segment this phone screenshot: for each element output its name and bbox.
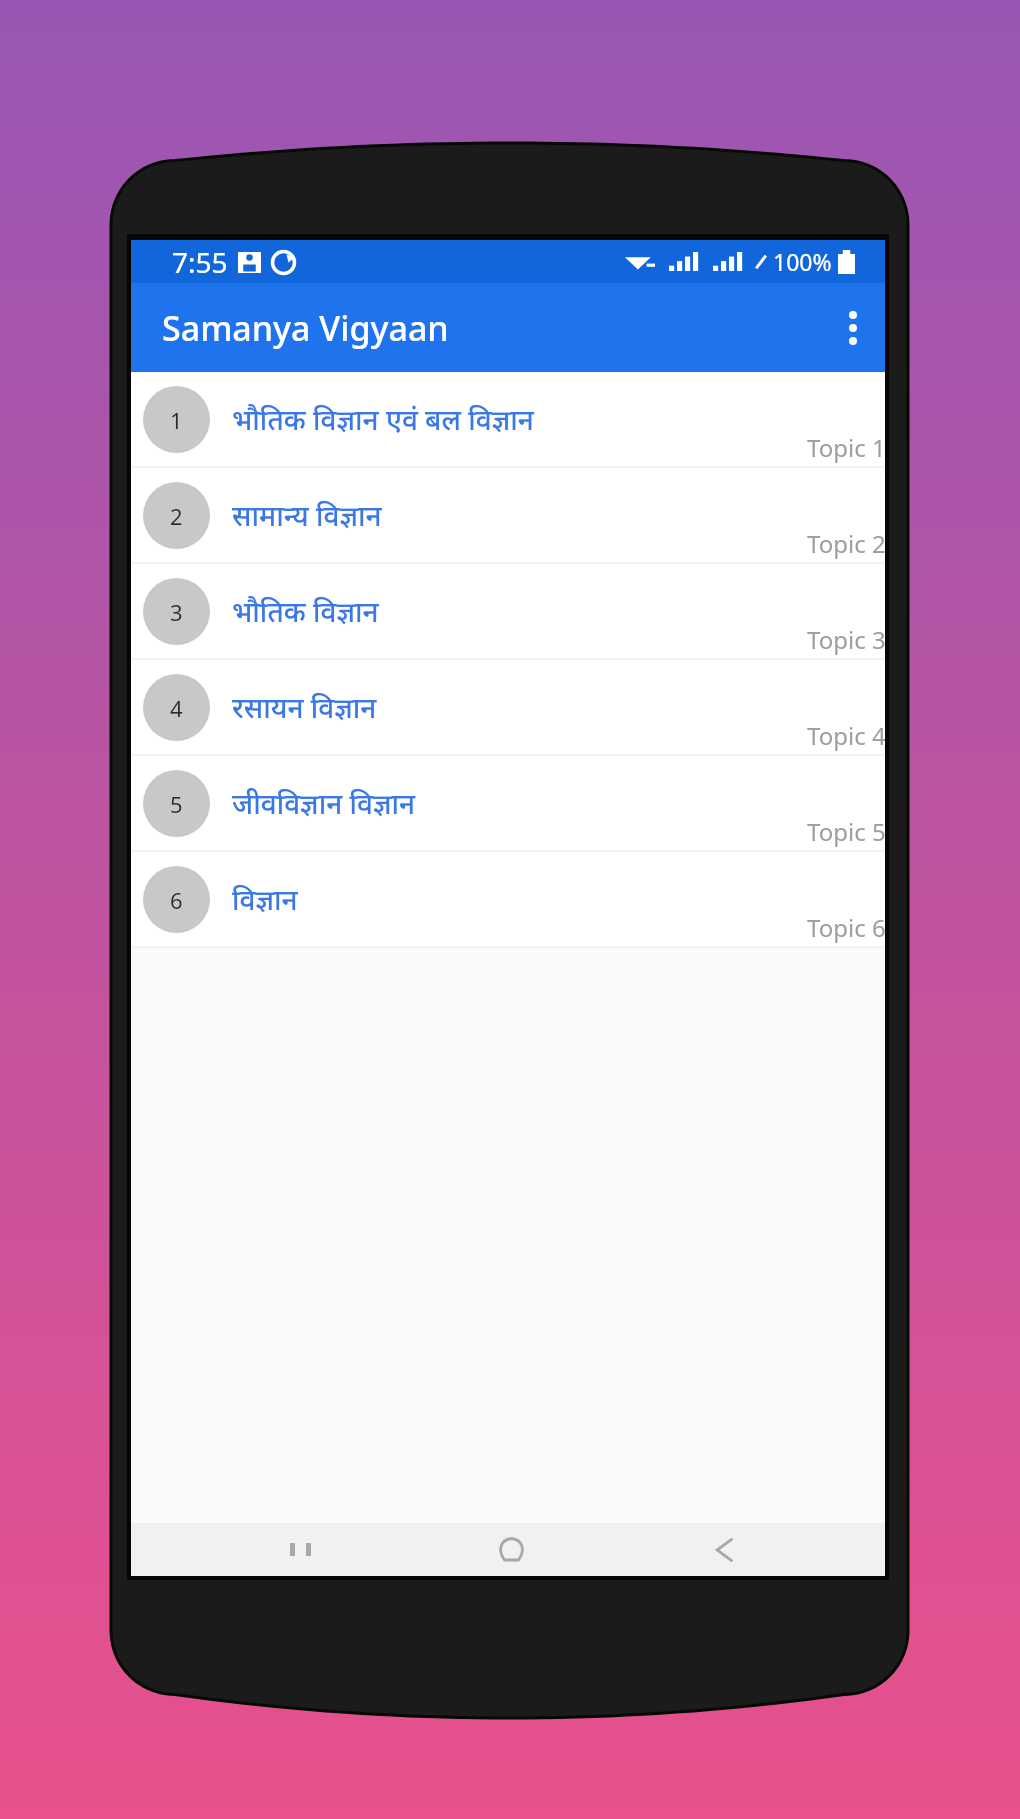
button[interactable]: More options [821,284,885,371]
staticText: Topic 1 [807,431,885,464]
staticText: विज्ञान [232,880,298,918]
button[interactable]: 4 [131,660,885,754]
button[interactable]: 6 [131,852,885,946]
staticText: Topic 6 [807,911,885,944]
staticText: 6 [170,885,183,915]
staticText: Samanya Vigyaan [162,305,449,351]
button[interactable]: Recents [274,1523,326,1576]
staticText: भौतिक विज्ञान [232,592,379,630]
button[interactable]: 2 [131,468,885,562]
staticText: 100% [773,246,832,277]
button[interactable]: Back [698,1523,750,1576]
button[interactable]: 5 [131,756,885,850]
staticText: 7:55 [172,243,228,281]
staticText: 5 [170,789,183,819]
staticText: Topic 4 [807,719,885,752]
staticText: 2 [170,501,183,531]
staticText: 3 [170,597,183,627]
staticText: Topic 2 [807,527,885,560]
staticText: 4 [170,693,183,723]
staticText: Topic 5 [807,815,885,848]
staticText: Topic 3 [807,623,885,656]
staticText: रसायन विज्ञान [232,688,377,726]
staticText: भौतिक विज्ञान एवं बल विज्ञान [232,400,534,438]
button[interactable]: 1 [131,372,885,466]
staticText: 1 [170,405,183,435]
button[interactable]: 3 [131,564,885,658]
staticText: जीवविज्ञान विज्ञान [232,784,416,822]
staticText: सामान्य विज्ञान [232,496,382,534]
button[interactable]: Home [485,1523,537,1576]
